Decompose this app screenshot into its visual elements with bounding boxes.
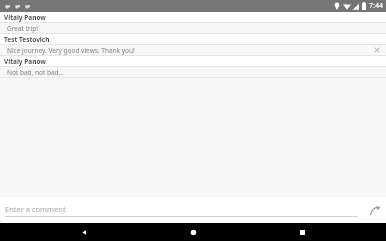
button[interactable]: Back — [75, 223, 93, 241]
button[interactable]: Delete comment — [372, 45, 382, 55]
staticText: Nice journey. Very good views. Thank you… — [7, 46, 135, 55]
button[interactable]: Home — [184, 223, 202, 241]
staticText: Vitaly Panow — [4, 57, 46, 66]
button[interactable]: Nice journey. Very good views. Thank you… — [0, 45, 386, 55]
button[interactable]: Send comment — [367, 202, 383, 218]
staticText: Vitaly Panow — [4, 13, 46, 22]
staticText: Great trip! — [7, 24, 39, 33]
staticText: Enter a comment — [5, 204, 66, 214]
button[interactable]: Vitaly Panow — [0, 12, 386, 22]
button[interactable]: Enter a comment — [5, 204, 358, 217]
staticText: Not bad, not bad... — [7, 68, 64, 77]
button[interactable]: Great trip! — [0, 23, 386, 33]
button[interactable]: Recent apps — [293, 223, 311, 241]
staticText: Test Testovich — [4, 35, 50, 44]
button[interactable]: Vitaly Panow — [0, 56, 386, 66]
button[interactable]: Test Testovich — [0, 34, 386, 44]
button[interactable]: Not bad, not bad... — [0, 67, 386, 77]
staticText: 7:44 — [369, 1, 383, 11]
